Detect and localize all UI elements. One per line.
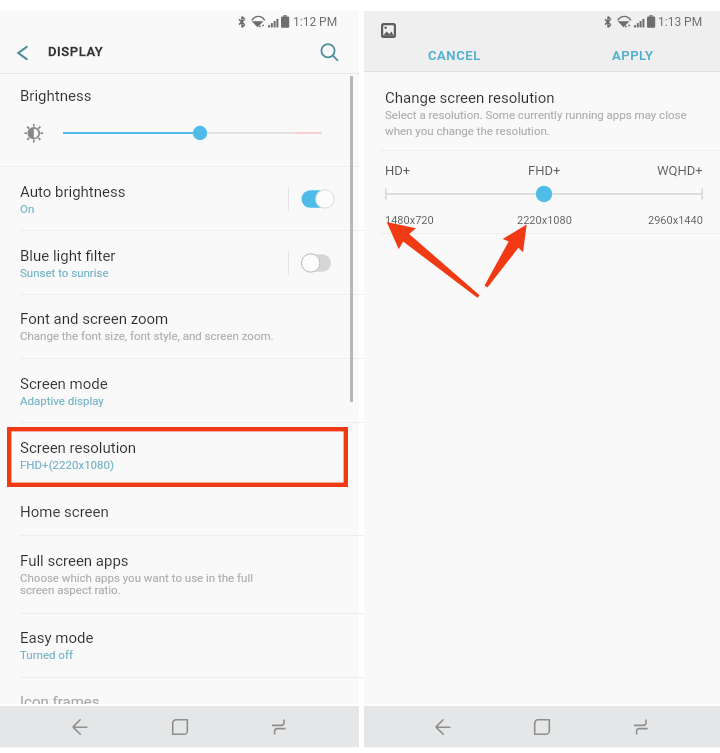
button[interactable]: Off	[299, 251, 339, 275]
staticText: 1480x720	[385, 214, 434, 227]
staticText: Sunset to sunrise	[20, 266, 109, 279]
button[interactable]: Back	[421, 706, 465, 747]
staticText: Easy mode	[20, 629, 94, 647]
button[interactable]: Recent apps	[257, 706, 301, 747]
button[interactable]: Auto brightness	[0, 166, 359, 230]
button[interactable]: APPLY	[563, 40, 703, 70]
button[interactable]: Home	[520, 706, 564, 747]
staticText: 1:12 PM	[293, 15, 338, 29]
button[interactable]: Navigate up	[8, 39, 37, 68]
staticText: Adaptive display	[20, 394, 104, 407]
staticText: Icon frames	[20, 693, 100, 711]
staticText: 1:13 PM	[658, 15, 703, 29]
staticText: Screen resolution	[20, 439, 137, 457]
button[interactable]: Font and screen zoom	[0, 294, 359, 358]
staticText: FHD+(2220x1080)	[20, 458, 114, 471]
staticText: DISPLAY	[48, 44, 104, 59]
staticText: Font and screen zoom	[20, 310, 169, 328]
staticText: 2960x1440	[648, 214, 703, 227]
staticText: Select a resolution. Some currently runn…	[385, 108, 687, 137]
button[interactable]: Back	[58, 706, 102, 747]
staticText: 2220x1080	[517, 214, 572, 227]
button[interactable]: Blue light filter	[0, 230, 359, 294]
staticText: Change the font size, font style, and sc…	[20, 329, 274, 342]
staticText: Home screen	[20, 503, 109, 521]
staticText: Choose which apps you want to use in the…	[20, 571, 253, 597]
button[interactable]: CANCEL	[384, 40, 524, 70]
staticText: HD+	[385, 163, 411, 178]
button[interactable]: On	[299, 187, 339, 211]
staticText: Screen mode	[20, 375, 108, 393]
staticText: FHD+	[528, 163, 561, 178]
staticText: Change screen resolution	[385, 89, 555, 107]
staticText: On	[20, 202, 35, 215]
button[interactable]: Easy mode	[0, 613, 359, 677]
staticText: Brightness	[20, 87, 92, 105]
staticText: WQHD+	[657, 163, 703, 178]
button[interactable]: Home	[158, 706, 202, 747]
staticText: CANCEL	[428, 48, 481, 63]
button[interactable]: Screen mode	[0, 358, 359, 422]
button[interactable]: Full screen apps	[0, 535, 359, 613]
staticText: Turned off	[20, 648, 73, 661]
staticText: APPLY	[612, 48, 654, 63]
staticText: Full screen apps	[20, 552, 129, 570]
button[interactable]: Icon frames	[0, 677, 359, 706]
button[interactable]: Recent apps	[619, 706, 663, 747]
button[interactable]: Search	[313, 36, 343, 66]
staticText: Auto brightness	[20, 183, 126, 201]
button[interactable]: Screen resolution	[0, 427, 359, 486]
button[interactable]: Home screen	[0, 486, 359, 535]
staticText: Blue light filter	[20, 247, 116, 265]
